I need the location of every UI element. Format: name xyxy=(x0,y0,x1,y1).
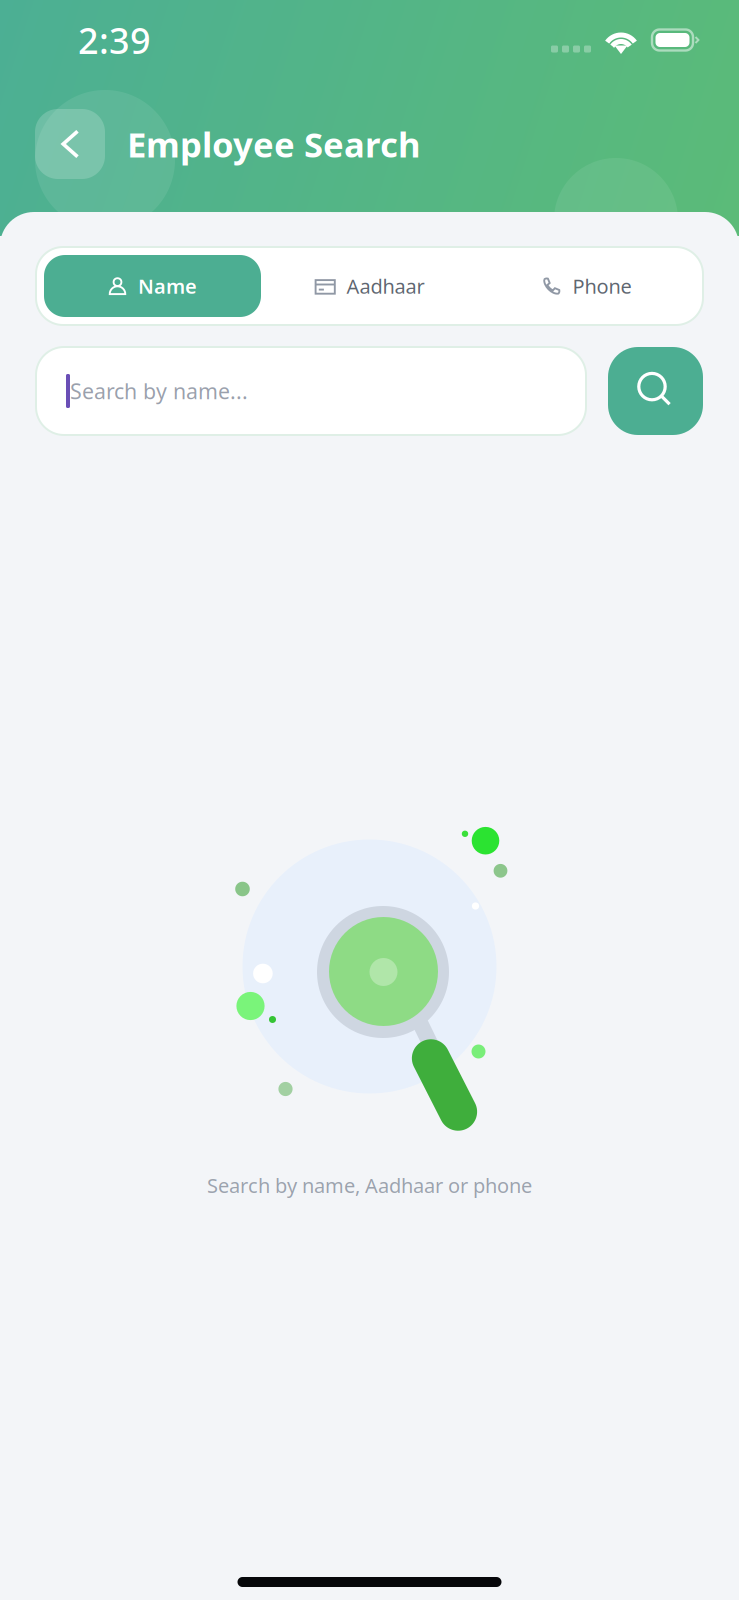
button[interactable]: Aadhaar xyxy=(261,255,478,317)
button[interactable]: Name xyxy=(44,255,261,317)
staticText: Name xyxy=(138,273,197,299)
staticText: Search by name... xyxy=(70,377,248,405)
staticText: Phone xyxy=(572,273,631,299)
button[interactable]: Search xyxy=(608,347,703,435)
staticText: Aadhaar xyxy=(346,273,424,299)
staticText: Search by name, Aadhaar or phone xyxy=(207,1172,532,1199)
staticText: Employee Search xyxy=(127,121,421,167)
button[interactable]: Phone xyxy=(478,255,695,317)
staticText: 2:39 xyxy=(78,16,151,64)
button[interactable]: Back xyxy=(35,109,105,179)
